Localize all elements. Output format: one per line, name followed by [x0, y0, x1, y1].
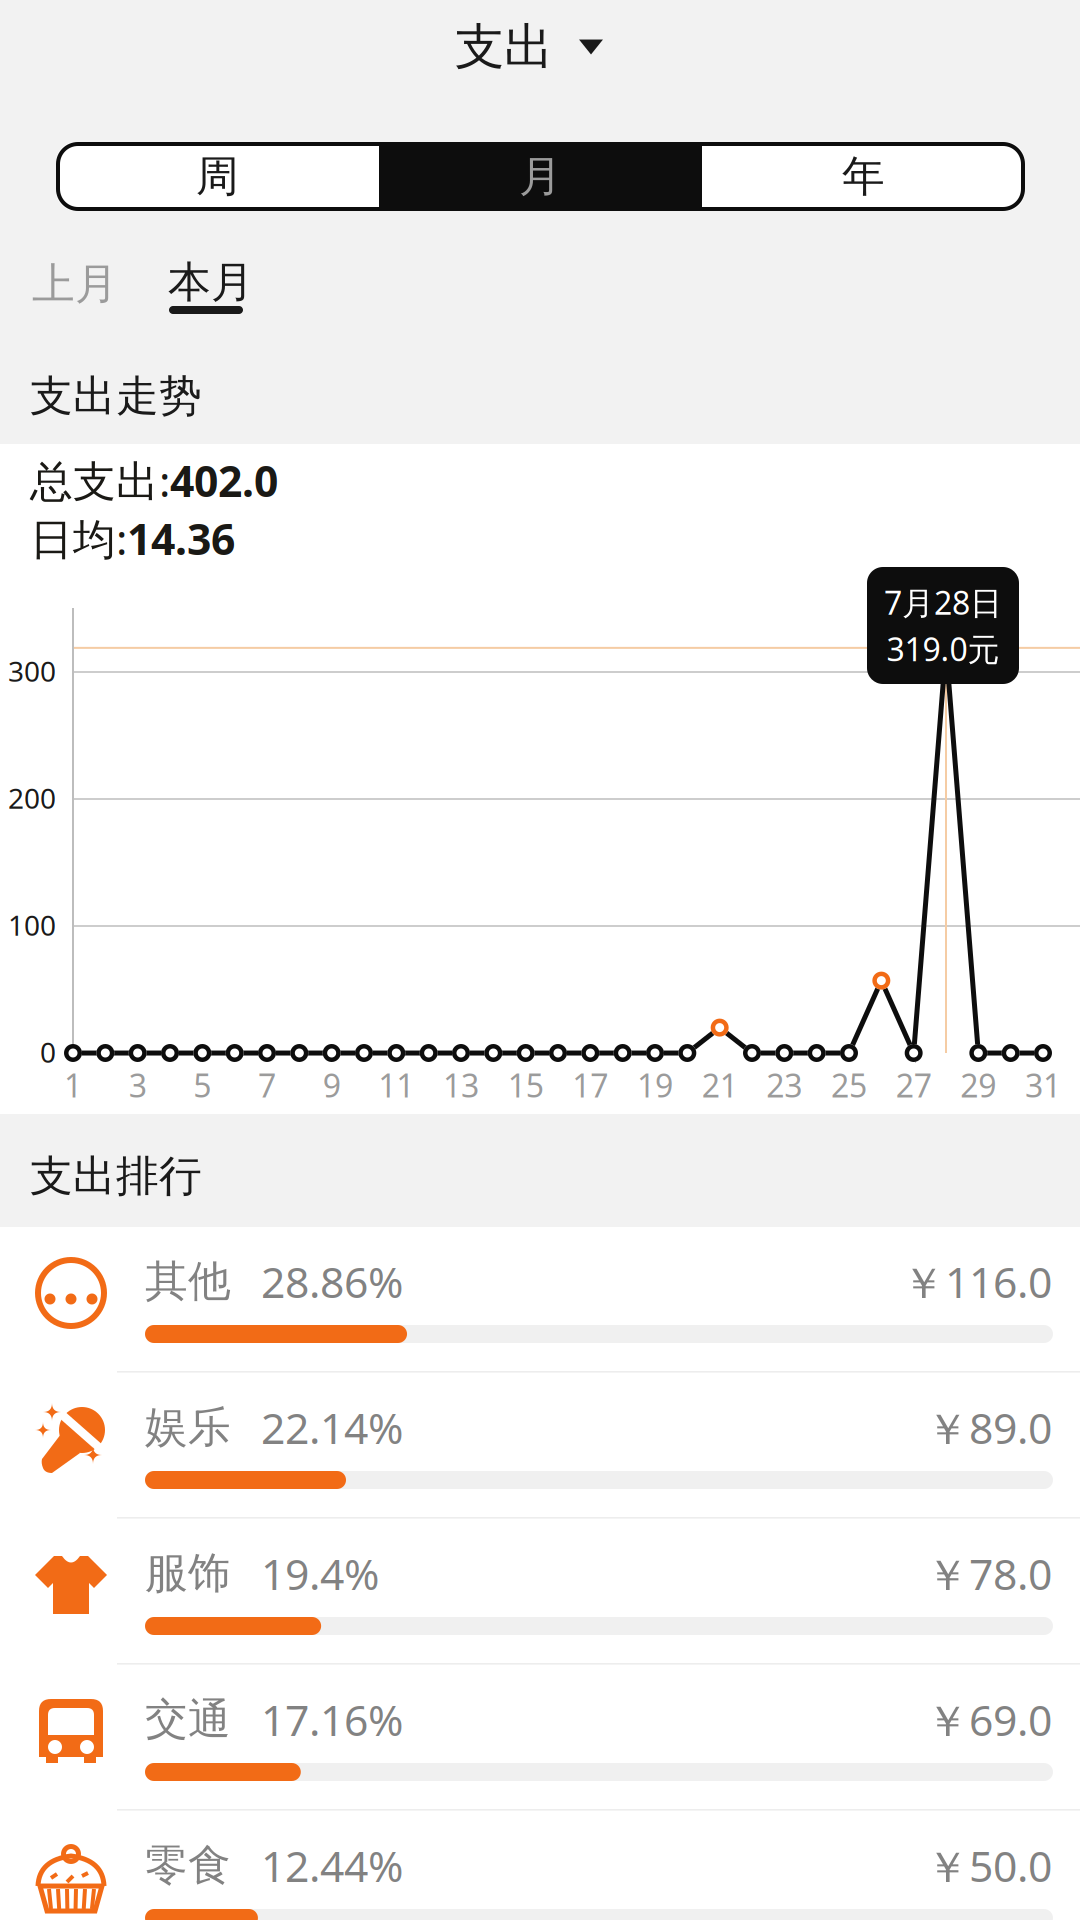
staticText: 100 [8, 906, 56, 944]
staticText: ￥50.0 [926, 1837, 1052, 1894]
staticText: ￥89.0 [926, 1399, 1052, 1456]
button[interactable]: 上月 [32, 256, 128, 312]
staticText: 零食 [145, 1839, 231, 1891]
button[interactable]: 支出 [455, 17, 603, 77]
staticText: 31 [1025, 1064, 1061, 1106]
staticText: 12.44% [261, 1837, 403, 1894]
staticText: 22.14% [261, 1399, 403, 1456]
staticText: 0 [40, 1033, 56, 1071]
staticText: 200 [8, 779, 56, 817]
staticText: 支出走势 [30, 370, 202, 422]
staticText: 5 [193, 1064, 211, 1106]
button[interactable]: 零食 [0, 1811, 1080, 1920]
staticText: 支出排行 [30, 1150, 202, 1202]
staticText: 21 [702, 1064, 738, 1106]
staticText: 总支出:402.0 [30, 452, 278, 509]
staticText: 11 [378, 1064, 414, 1106]
staticText: 月 [519, 150, 562, 203]
staticText: 319.0元 [886, 627, 999, 670]
button[interactable]: 本月 [168, 256, 264, 332]
button[interactable]: 年 [702, 142, 1025, 211]
staticText: 19.4% [261, 1545, 379, 1602]
staticText: 13 [443, 1064, 479, 1106]
button[interactable]: 周 [56, 142, 379, 211]
staticText: 7月28日 [884, 581, 1002, 623]
staticText: 17 [572, 1064, 608, 1106]
staticText: 周 [196, 150, 239, 203]
staticText: 29 [960, 1064, 996, 1106]
staticText: 17.16% [261, 1691, 403, 1748]
staticText: 支出 [455, 17, 553, 77]
staticText: 15 [508, 1064, 544, 1106]
staticText: 日均:14.36 [30, 510, 235, 567]
staticText: 交通 [145, 1693, 231, 1745]
staticText: 本月 [168, 256, 254, 308]
staticText: 25 [831, 1064, 867, 1106]
staticText: 3 [129, 1064, 147, 1106]
staticText: 28.86% [261, 1253, 403, 1310]
staticText: 其他 [145, 1255, 231, 1307]
button[interactable]: 其他 [0, 1227, 1080, 1373]
staticText: 服饰 [145, 1547, 231, 1599]
staticText: ￥78.0 [926, 1545, 1052, 1602]
staticText: 7 [258, 1064, 276, 1106]
staticText: 1 [64, 1064, 82, 1106]
staticText: 27 [896, 1064, 932, 1106]
staticText: ￥69.0 [926, 1691, 1052, 1748]
button[interactable]: 服饰 [0, 1519, 1080, 1665]
button[interactable]: 娱乐 [0, 1373, 1080, 1519]
staticText: 300 [8, 652, 56, 690]
staticText: 9 [323, 1064, 341, 1106]
staticText: 年 [842, 150, 885, 203]
staticText: ￥116.0 [902, 1253, 1052, 1310]
staticText: 上月 [32, 258, 118, 310]
staticText: 娱乐 [145, 1401, 231, 1453]
button[interactable]: 交通 [0, 1665, 1080, 1811]
staticText: 19 [637, 1064, 673, 1106]
staticText: 23 [766, 1064, 802, 1106]
button[interactable]: 月 [379, 142, 702, 211]
